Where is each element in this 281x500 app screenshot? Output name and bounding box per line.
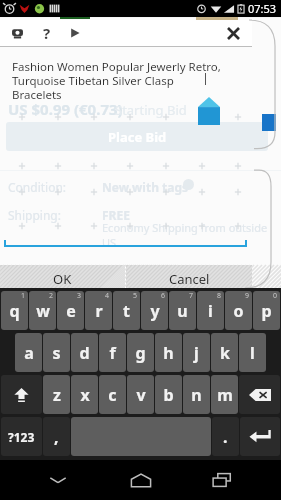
button[interactable]: j bbox=[183, 333, 210, 372]
button[interactable]: , bbox=[43, 417, 70, 456]
button[interactable]: d bbox=[71, 333, 98, 372]
staticText: Fashion Women Popular Jewerly Retro, Tur… bbox=[12, 59, 222, 102]
button[interactable]: n bbox=[183, 375, 210, 414]
staticText: 2 bbox=[49, 291, 54, 301]
button[interactable]: f bbox=[99, 333, 126, 372]
staticText: g bbox=[135, 342, 146, 364]
button[interactable]: o bbox=[225, 291, 252, 330]
button[interactable]: b bbox=[155, 375, 182, 414]
button[interactable]: i bbox=[197, 291, 224, 330]
button[interactable]: Back bbox=[34, 460, 82, 500]
staticText: 8 bbox=[217, 291, 222, 301]
staticText: z bbox=[53, 384, 61, 406]
button[interactable]: h bbox=[155, 333, 182, 372]
button[interactable]: s bbox=[43, 333, 70, 372]
button[interactable]: v bbox=[127, 375, 154, 414]
staticText: k bbox=[220, 342, 230, 364]
staticText: l bbox=[250, 342, 255, 364]
button[interactable]: r bbox=[85, 291, 112, 330]
staticText: p bbox=[261, 300, 272, 322]
button[interactable]: Help bbox=[37, 23, 57, 43]
staticText: OK bbox=[53, 270, 72, 288]
staticText: 07:53 bbox=[248, 1, 277, 16]
staticText: Economy Shipping from outside US bbox=[102, 220, 272, 250]
button[interactable]: m bbox=[211, 375, 238, 414]
button[interactable]: z bbox=[43, 375, 70, 414]
staticText: Cancel bbox=[169, 270, 210, 288]
staticText: u bbox=[177, 300, 188, 322]
staticText: US $0.99 (€0.73) bbox=[8, 99, 123, 119]
staticText: o bbox=[233, 300, 244, 322]
staticText: Condition: bbox=[8, 179, 67, 195]
button[interactable]: g bbox=[127, 333, 154, 372]
staticText: t bbox=[123, 300, 130, 322]
button[interactable]: OK bbox=[0, 265, 125, 292]
staticText: Shipping: bbox=[8, 207, 61, 223]
button[interactable]: y bbox=[141, 291, 168, 330]
staticText: 6 bbox=[161, 291, 166, 301]
staticText: h bbox=[163, 342, 174, 364]
button[interactable]: u bbox=[169, 291, 196, 330]
staticText: 9 bbox=[245, 291, 250, 301]
staticText: i bbox=[208, 300, 213, 322]
staticText: d bbox=[79, 342, 90, 364]
staticText: 0 bbox=[273, 291, 278, 301]
staticText: 3 bbox=[77, 291, 82, 301]
button[interactable]: e bbox=[57, 291, 84, 330]
staticText: . bbox=[223, 426, 228, 448]
staticText: x bbox=[80, 384, 90, 406]
staticText: , bbox=[54, 426, 59, 448]
staticText: v bbox=[136, 384, 146, 406]
staticText: 5 bbox=[133, 291, 138, 301]
button[interactable]: a bbox=[15, 333, 42, 372]
staticText: r bbox=[95, 300, 103, 322]
button[interactable]: x bbox=[71, 375, 98, 414]
button[interactable]: Home bbox=[117, 460, 165, 500]
staticText: ? bbox=[43, 23, 51, 43]
staticText: 1 bbox=[21, 291, 26, 301]
staticText: q bbox=[9, 300, 20, 322]
staticText: 7 bbox=[189, 291, 194, 301]
button[interactable]: . bbox=[212, 417, 239, 456]
staticText: n bbox=[191, 384, 202, 406]
button[interactable]: t bbox=[113, 291, 140, 330]
staticText: a bbox=[24, 342, 34, 364]
staticText: e bbox=[66, 300, 76, 322]
button[interactable]: Cancel bbox=[126, 265, 252, 292]
button[interactable]: Key bbox=[239, 375, 280, 414]
button[interactable]: l bbox=[239, 333, 266, 372]
staticText: f bbox=[109, 342, 116, 364]
button[interactable]: Recent apps bbox=[199, 460, 247, 500]
button[interactable]: k bbox=[211, 333, 238, 372]
button[interactable]: p bbox=[253, 291, 280, 330]
staticText: w bbox=[36, 300, 50, 322]
button[interactable]: Play bbox=[65, 23, 85, 43]
staticText: Place Bid bbox=[108, 128, 167, 146]
button[interactable]: ?123 bbox=[1, 417, 42, 456]
button[interactable]: Key bbox=[240, 417, 280, 456]
staticText: c bbox=[108, 384, 117, 406]
staticText: 4 bbox=[105, 291, 110, 301]
staticText: s bbox=[52, 342, 61, 364]
staticText: m bbox=[217, 384, 233, 406]
staticText: FREE bbox=[102, 207, 130, 223]
button[interactable]: Close bbox=[222, 22, 244, 44]
button[interactable]: Key bbox=[1, 375, 42, 414]
button[interactable]: w bbox=[29, 291, 56, 330]
staticText: j bbox=[194, 342, 199, 364]
button[interactable]: Place Bid bbox=[6, 122, 268, 151]
staticText: y bbox=[150, 300, 160, 322]
staticText: b bbox=[163, 384, 174, 406]
button[interactable]: q bbox=[1, 291, 28, 330]
staticText: Starting Bid bbox=[115, 101, 187, 119]
button[interactable]: Scan bbox=[7, 23, 27, 43]
button[interactable]: c bbox=[99, 375, 126, 414]
staticText: ?123 bbox=[8, 429, 35, 445]
staticText: New with tags bbox=[102, 179, 189, 195]
